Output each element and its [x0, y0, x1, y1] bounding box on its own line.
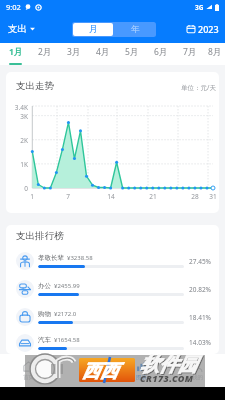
staticText: 31: [209, 192, 217, 201]
staticText: 2月: [38, 46, 52, 58]
button[interactable]: 2023: [187, 23, 219, 35]
staticText: 软件园: [140, 353, 197, 377]
button[interactable]: 8月: [204, 43, 225, 65]
button[interactable]: 3月: [59, 43, 88, 65]
staticText: 西西: [82, 360, 118, 383]
staticText: 2K: [20, 136, 28, 145]
staticText: 3月: [67, 46, 81, 58]
staticText: 7月: [183, 46, 197, 58]
staticText: 7: [66, 192, 70, 201]
button[interactable]: 支出: [8, 23, 35, 35]
staticText: 28: [191, 192, 199, 201]
staticText: 办公: [38, 282, 51, 290]
button[interactable]: 5月: [117, 43, 146, 65]
staticText: 1月: [9, 46, 23, 58]
button[interactable]: 年: [114, 22, 156, 37]
staticText: 图表: [136, 374, 147, 381]
staticText: ¥3238.58: [67, 254, 93, 262]
staticText: 1K: [20, 160, 28, 169]
staticText: 3K: [20, 112, 28, 121]
staticText: 孝敬长辈: [38, 254, 64, 262]
staticText: 21: [149, 192, 157, 201]
staticText: 年: [131, 24, 140, 35]
staticText: 27.45%: [189, 257, 212, 266]
staticText: 支出走势: [16, 80, 54, 92]
staticText: 月: [89, 24, 98, 35]
staticText: 0: [24, 184, 28, 193]
staticText: 首页: [23, 374, 34, 381]
button[interactable]: 汽车: [16, 331, 212, 354]
staticText: 3.4K: [14, 103, 28, 112]
button[interactable]: 2月: [30, 43, 59, 65]
staticText: 购物: [38, 310, 51, 318]
staticText: 14: [107, 192, 115, 201]
button[interactable]: 6月: [146, 43, 175, 65]
staticText: 4月: [96, 46, 110, 58]
staticText: 20.82%: [189, 285, 212, 294]
staticText: 1: [30, 192, 34, 201]
staticText: 明细: [80, 374, 91, 381]
button[interactable]: 购物: [16, 303, 212, 331]
staticText: 2023: [198, 23, 219, 35]
button[interactable]: 办公: [16, 275, 212, 303]
button[interactable]: 首页: [0, 354, 57, 387]
staticText: 我的: [192, 374, 203, 381]
button[interactable]: 4月: [88, 43, 117, 65]
button[interactable]: 我的: [169, 354, 225, 387]
staticText: 支出: [8, 23, 27, 35]
staticText: 3G: [195, 3, 204, 12]
staticText: 18.41%: [189, 313, 212, 322]
staticText: 软件园: [141, 354, 198, 378]
button[interactable]: 图表: [113, 354, 169, 387]
staticText: 汽车: [38, 336, 51, 344]
staticText: 单位：元/天: [181, 83, 216, 92]
staticText: ¥2455.99: [54, 282, 80, 290]
staticText: 支出排行榜: [16, 230, 64, 242]
staticText: 5月: [125, 46, 139, 58]
staticText: 14.03%: [189, 338, 212, 347]
button[interactable]: 孝敬长辈: [16, 247, 212, 275]
staticText: ¥2172.0: [54, 310, 77, 318]
button[interactable]: 1月: [1, 43, 30, 65]
staticText: ¥1654.58: [54, 336, 80, 344]
staticText: 6月: [154, 46, 168, 58]
staticText: 8月: [208, 46, 222, 58]
button[interactable]: 明细: [57, 354, 113, 387]
staticText: 9:02: [6, 2, 21, 12]
button[interactable]: 7月: [175, 43, 204, 65]
staticText: CR173.COM: [140, 372, 194, 384]
button[interactable]: 月: [73, 23, 113, 36]
